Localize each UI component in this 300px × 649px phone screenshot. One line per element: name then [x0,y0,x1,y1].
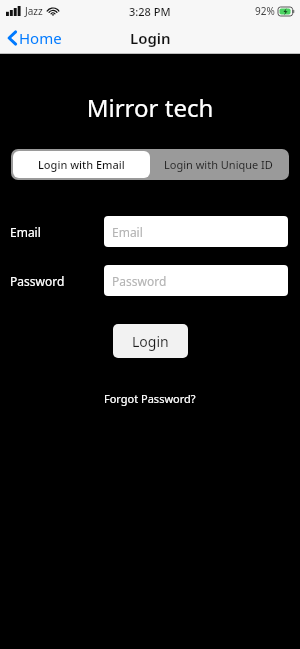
button[interactable]: Password [104,265,288,296]
staticText: Login with Unique ID [164,157,273,172]
staticText: Email [112,224,143,240]
staticText: Login [130,28,171,48]
staticText: Login with Email [38,157,125,172]
staticText: 92% [255,4,275,18]
staticText: Password [112,273,167,289]
staticText: Mirror tech [0,91,300,124]
button[interactable]: Home [5,25,65,51]
staticText: Forgot Password? [104,391,196,406]
staticText: Login [132,332,169,351]
staticText: Email [10,224,104,240]
button[interactable]: Email [104,216,288,247]
button[interactable]: Login [113,324,188,358]
button[interactable]: Login with Unique ID [150,151,287,178]
button[interactable]: Forgot Password? [98,388,202,409]
button[interactable]: Login with Email [13,151,150,178]
staticText: Jazz [25,4,43,18]
staticText: Password [10,273,104,289]
staticText: Home [19,28,62,48]
staticText: 3:28 PM [129,4,171,19]
